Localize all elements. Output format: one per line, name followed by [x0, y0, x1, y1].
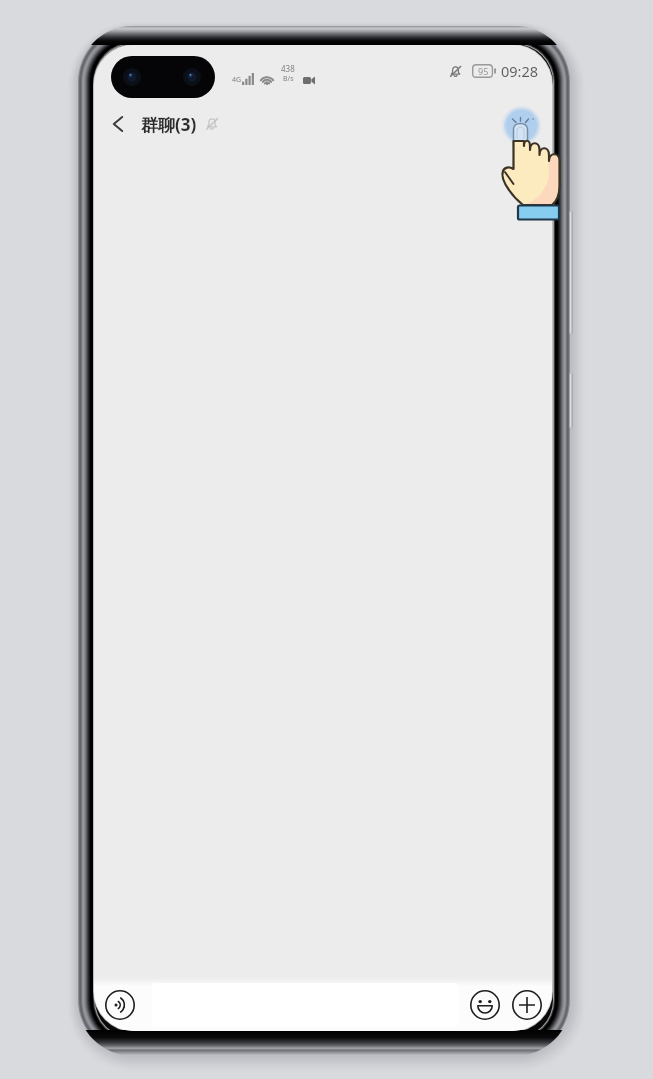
staticText: 95	[478, 65, 489, 77]
staticText: 4G	[232, 75, 242, 85]
staticText: B/s	[283, 74, 294, 84]
staticText: 438	[281, 63, 295, 74]
button[interactable]: More	[510, 983, 544, 1027]
button[interactable]: Emoji	[468, 983, 502, 1027]
button[interactable]: Voice input	[102, 983, 138, 1027]
button[interactable]: Back	[94, 103, 141, 145]
staticText: 09:28	[501, 61, 539, 81]
button[interactable]: 群聊(3)	[141, 103, 225, 145]
staticText: 群聊(3)	[141, 113, 197, 136]
